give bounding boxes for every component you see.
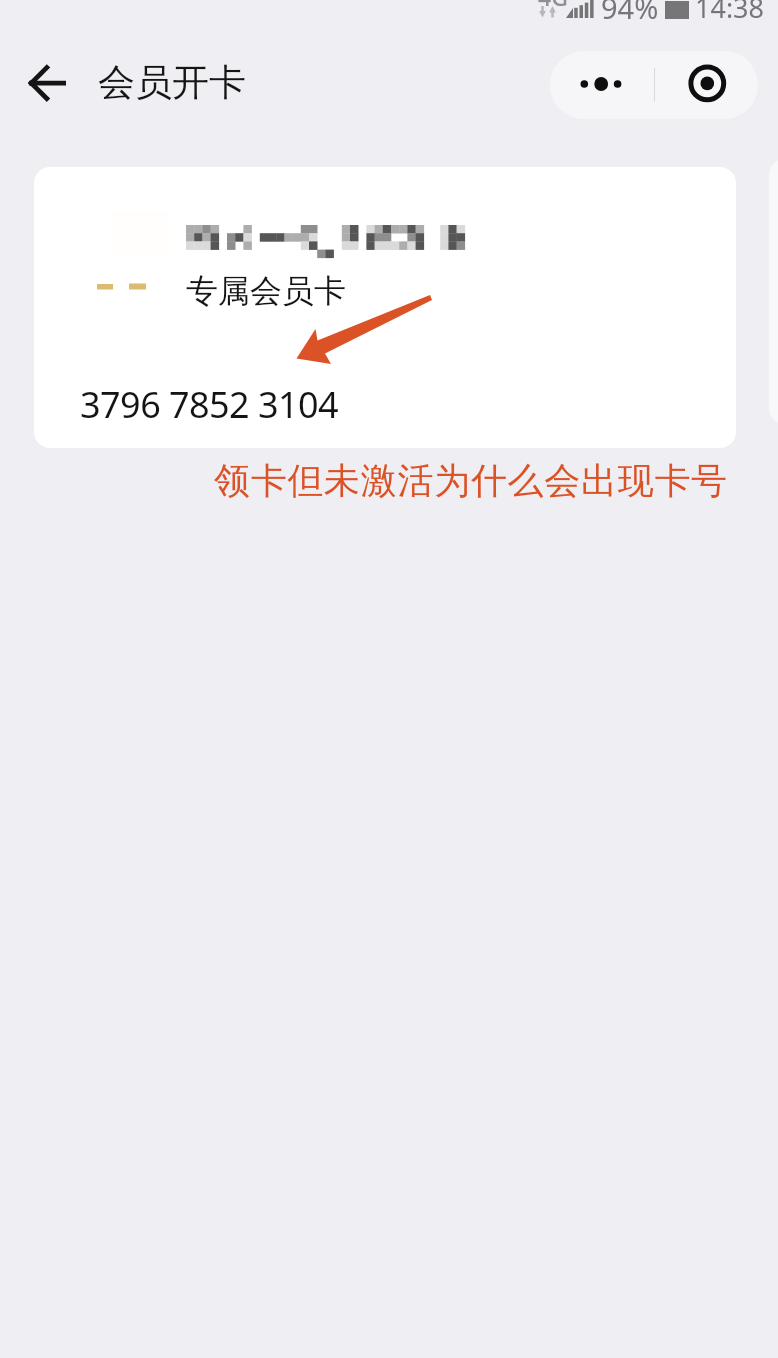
staticText: 3796 7852 3104: [80, 380, 339, 429]
staticText: 专属会员卡: [186, 271, 346, 311]
staticText: 94%: [601, 0, 659, 27]
button[interactable]: 专属会员卡: [34, 167, 736, 448]
button[interactable]: Close mini program: [655, 51, 758, 119]
staticText: 领卡但未激活为什么会出现卡号: [214, 458, 728, 503]
button[interactable]: Back: [8, 43, 84, 119]
button[interactable]: 会员开卡: [98, 59, 246, 106]
button[interactable]: More options: [550, 51, 654, 119]
staticText: 会员开卡: [98, 59, 246, 106]
staticText: 4G: [538, 0, 568, 12]
staticText: 14:38: [695, 0, 765, 26]
